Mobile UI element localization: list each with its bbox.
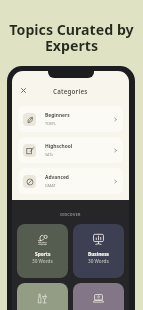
- button[interactable]: Advanced: [18, 168, 123, 194]
- staticText: Highschool: [45, 143, 73, 150]
- button[interactable]: Tech: [73, 283, 124, 310]
- button[interactable]: Highschool: [18, 137, 123, 163]
- staticText: Sports: [35, 251, 51, 258]
- staticText: Categories: [53, 87, 88, 95]
- button[interactable]: Food: [17, 283, 68, 310]
- staticText: 30 Words: [32, 258, 53, 264]
- button[interactable]: Sports: [17, 224, 68, 278]
- staticText: GMAT: [45, 183, 56, 188]
- button[interactable]: Close: [17, 84, 30, 97]
- button[interactable]: Business: [73, 224, 124, 278]
- button[interactable]: Beginners: [18, 106, 123, 132]
- staticText: DISCOVER: [17, 212, 124, 217]
- staticText: Business: [88, 251, 109, 258]
- staticText: Beginners: [45, 112, 70, 119]
- staticText: Advanced: [45, 174, 69, 181]
- staticText: Topics Curated by Experts: [9, 20, 134, 56]
- staticText: TOEFL: [45, 121, 57, 126]
- staticText: 30 Words: [88, 258, 109, 264]
- staticText: SATs: [45, 152, 53, 157]
